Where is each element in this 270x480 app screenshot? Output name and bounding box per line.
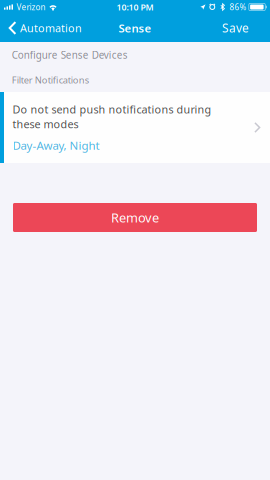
staticText: Automation [20, 21, 82, 35]
staticText: 86% [229, 1, 246, 13]
staticText: Do not send push notifications during th… [13, 102, 212, 131]
button[interactable]: Remove [13, 203, 257, 232]
button[interactable]: Save [214, 14, 270, 42]
button[interactable]: Do not send push notifications during th… [0, 92, 270, 163]
staticText: Sense [118, 20, 151, 36]
staticText: 10:10 PM [116, 1, 153, 13]
staticText: Filter Notifications [12, 74, 89, 86]
staticText: Remove [111, 209, 159, 226]
staticText: Verizon [16, 1, 45, 13]
staticText: Configure Sense Devices [12, 48, 128, 62]
staticText: Day-Away, Night [13, 137, 100, 153]
staticText: Save [222, 20, 249, 36]
button[interactable]: Automation [0, 14, 89, 42]
